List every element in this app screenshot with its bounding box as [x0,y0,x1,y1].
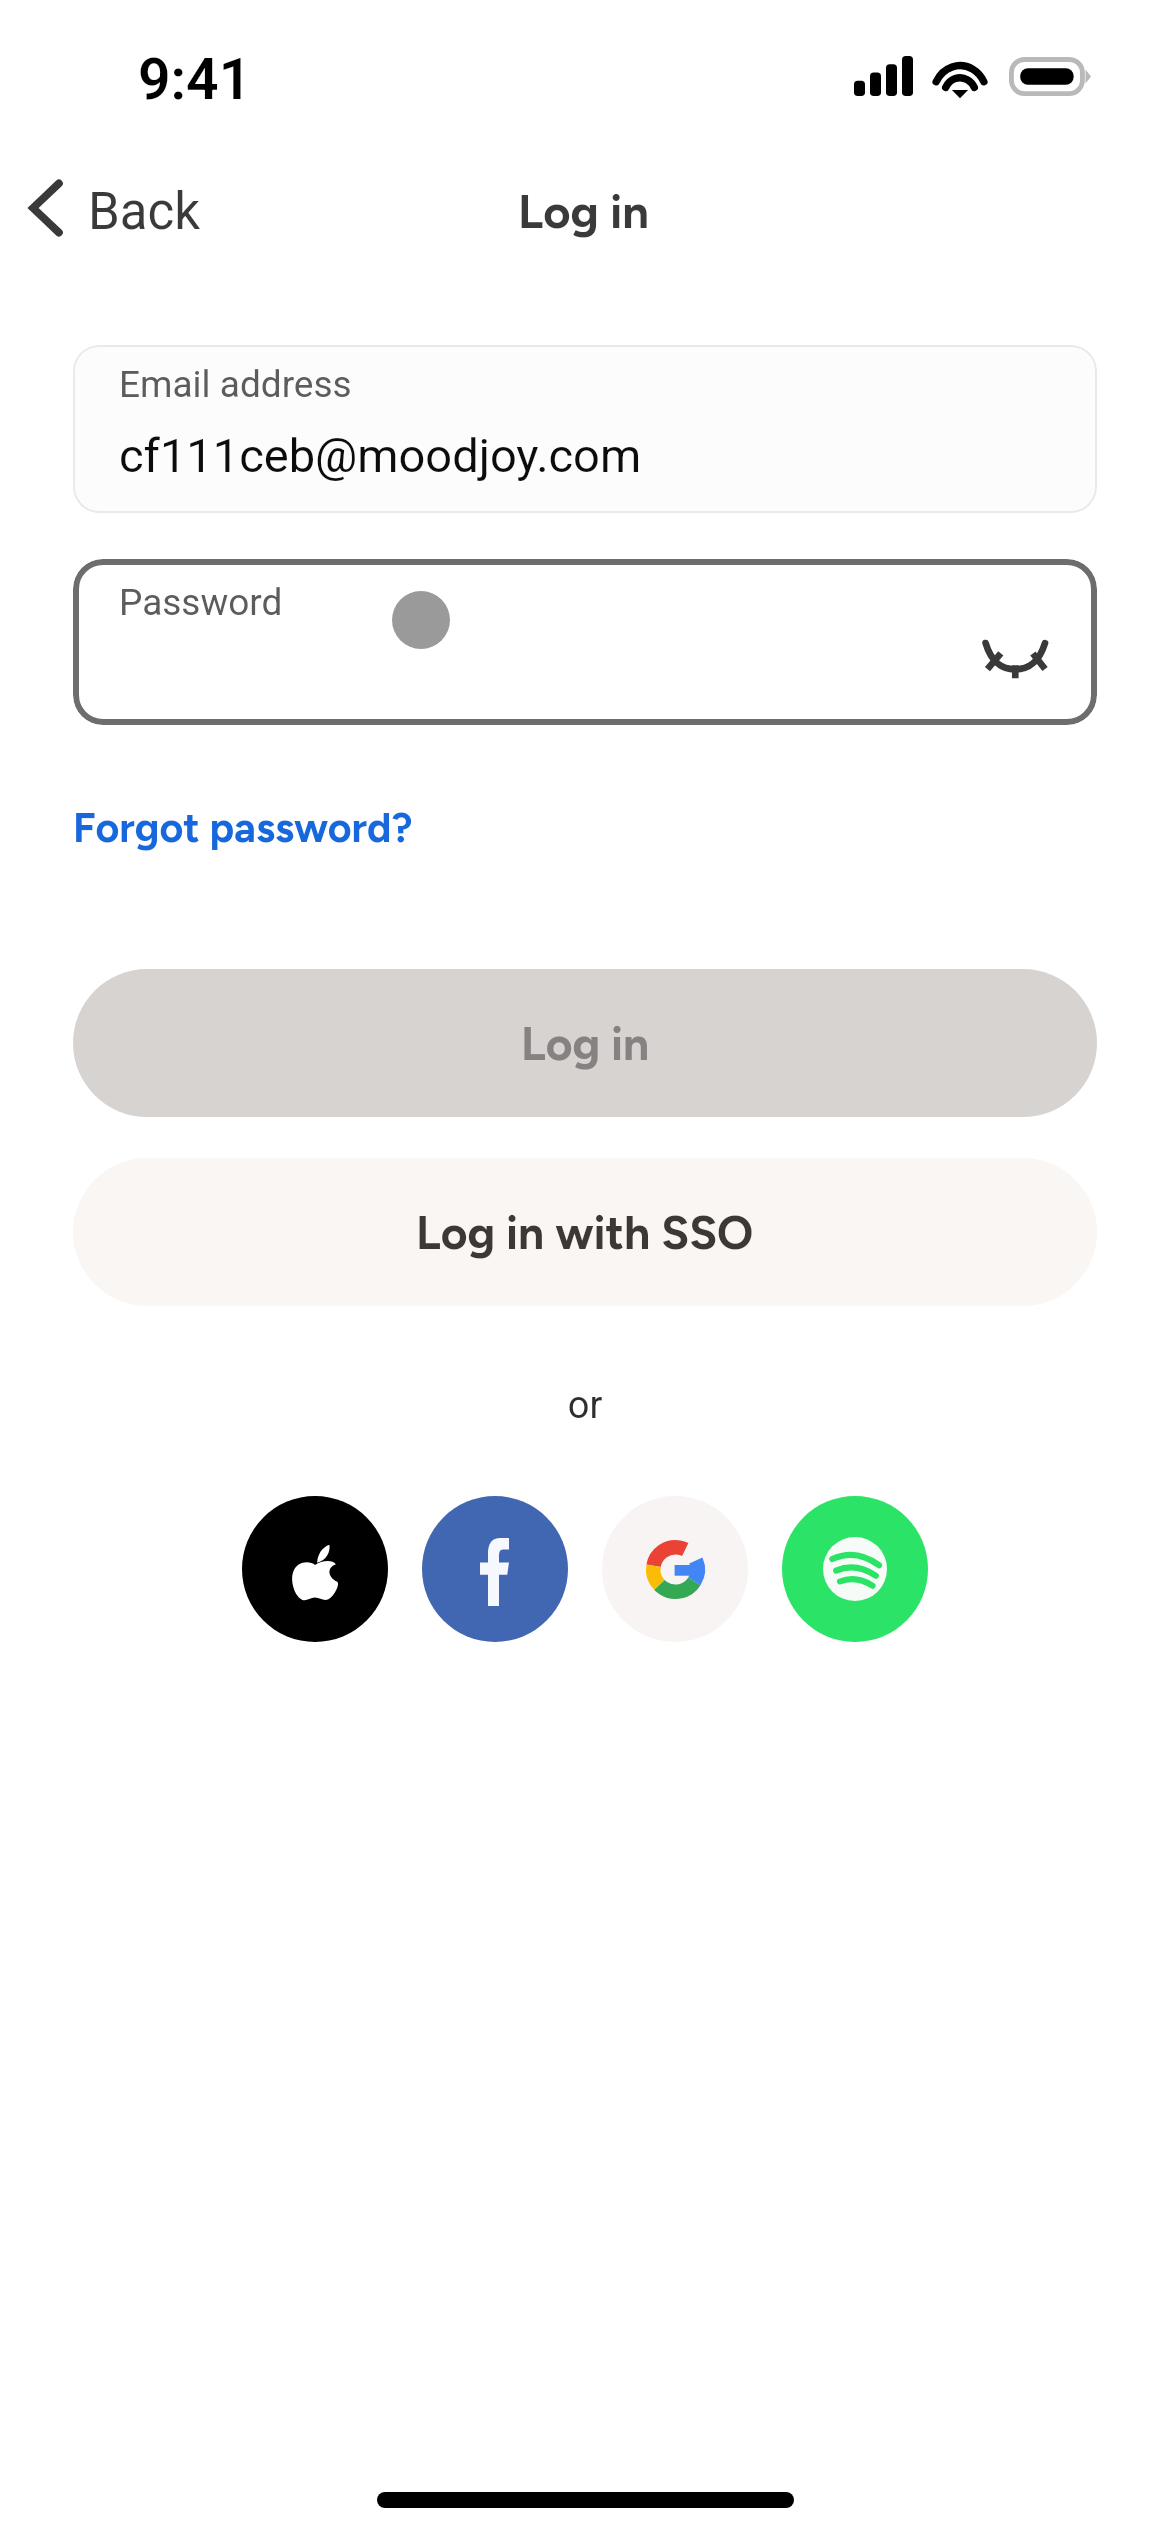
staticText: 9:41 [138,46,252,113]
button[interactable]: Show password [978,635,1058,687]
button[interactable]: Password [73,559,1097,725]
staticText: Log in [518,183,649,239]
button[interactable]: Sign in with Google [602,1496,748,1642]
staticText: or [0,1383,1170,1428]
staticText: Back [88,182,201,242]
staticText: Email address [119,363,352,406]
staticText: Log in with SSO [416,1205,754,1260]
button[interactable]: Email address [73,345,1097,513]
staticText: Log in [521,1016,650,1071]
button[interactable]: Log in [73,969,1097,1117]
staticText: Password [119,581,283,624]
button[interactable]: Sign in with Apple [242,1496,388,1642]
button[interactable]: Log in with SSO [73,1158,1097,1306]
button[interactable]: Sign in with Facebook [422,1496,568,1642]
button[interactable]: Forgot password? [73,803,413,852]
button[interactable]: Back [0,168,225,256]
button[interactable]: Sign in with Spotify [782,1496,928,1642]
staticText: cf111ceb@moodjoy.com [119,428,642,483]
